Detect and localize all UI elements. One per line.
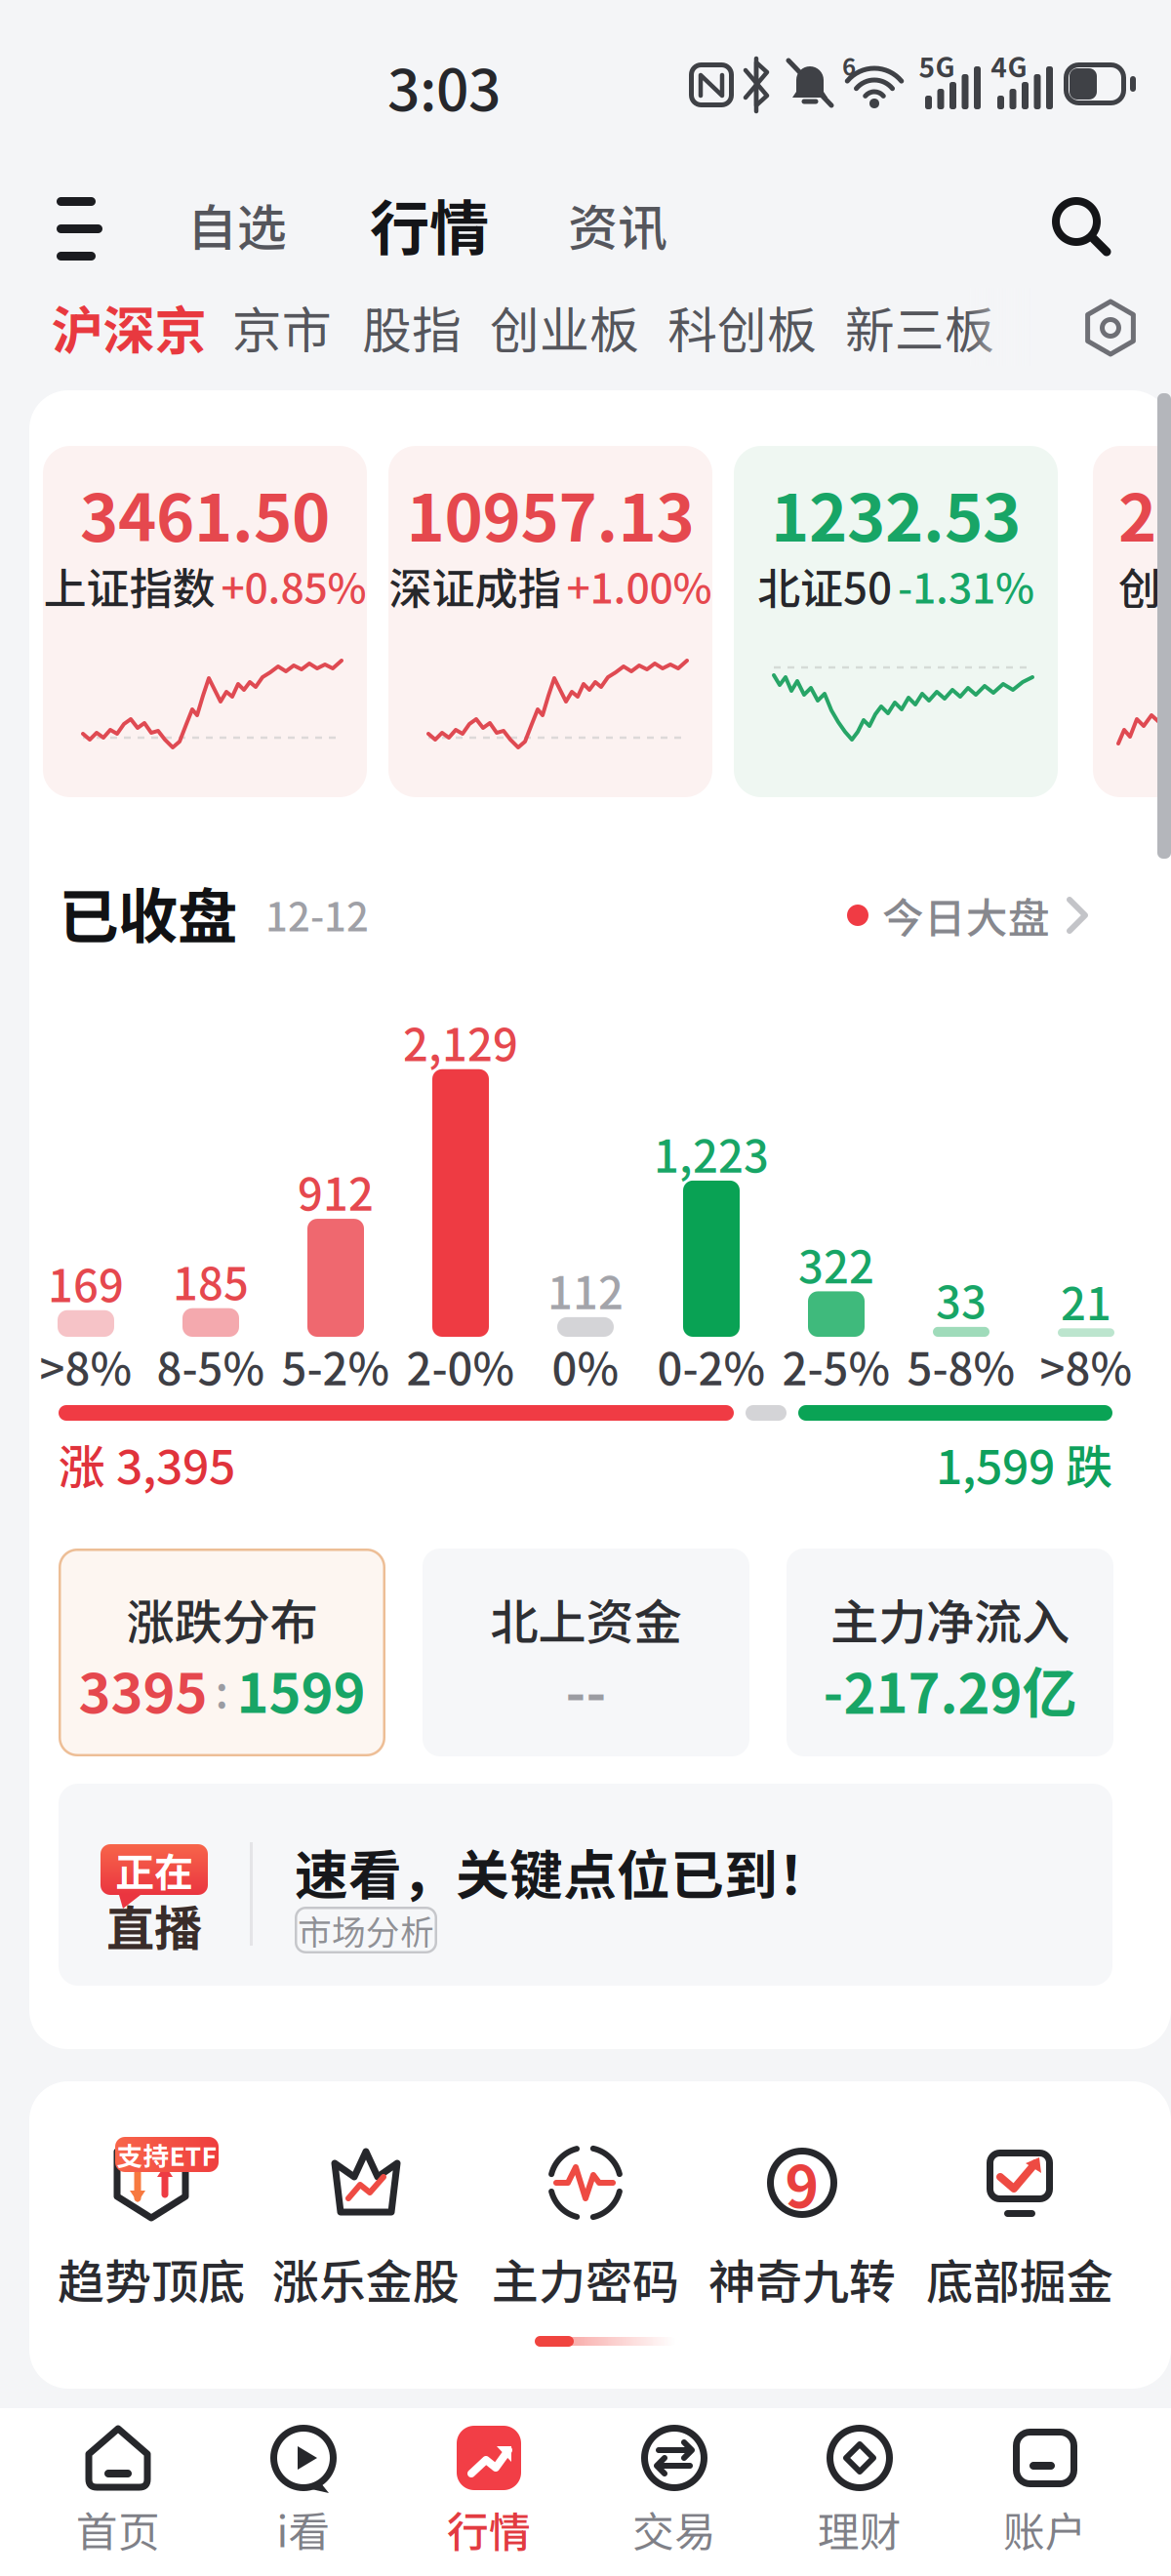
staticText: 3:03 (387, 44, 501, 127)
staticText: 2,129 (403, 1010, 518, 1074)
staticText: 底部掘金 (926, 2244, 1113, 2312)
button[interactable]: 行情 (396, 2419, 582, 2561)
staticText: 涨乐金股 (272, 2244, 460, 2312)
staticText: 行情 (370, 181, 489, 268)
staticText: 0-2% (657, 1334, 766, 1398)
button[interactable]: 股指 (348, 293, 475, 361)
staticText: 33 (936, 1268, 987, 1332)
staticText: 1599 (237, 1650, 365, 1729)
staticText: 主力净流入 (830, 1584, 1070, 1654)
staticText: 自选 (187, 189, 287, 260)
staticText: 9 (785, 2141, 819, 2224)
button[interactable]: 账户 (952, 2419, 1138, 2561)
staticText: 1,223 (654, 1121, 769, 1185)
staticText: 322 (798, 1232, 874, 1296)
staticText: 2-5% (782, 1334, 890, 1398)
staticText: 今日大盘 (882, 885, 1050, 945)
staticText: +1.00% (566, 555, 712, 616)
button[interactable]: 科创板 (657, 293, 828, 361)
staticText: +0.85% (221, 555, 366, 616)
staticText: 科创板 (667, 291, 817, 363)
staticText: -- (565, 1650, 606, 1729)
button[interactable]: Settings (1081, 299, 1140, 357)
staticText: 12-12 (265, 886, 369, 942)
staticText: 资讯 (568, 189, 667, 260)
button[interactable]: 沪深京 (41, 293, 217, 361)
button[interactable]: 10957.13 (402, 446, 726, 797)
button[interactable]: 涨跌分布 (59, 1549, 385, 1756)
staticText: 支持ETF (117, 2136, 217, 2173)
button[interactable]: 理财 (767, 2419, 952, 2561)
staticText: 5-8% (907, 1334, 1015, 1398)
staticText: 169 (48, 1251, 124, 1315)
staticText: 3395 (79, 1650, 207, 1729)
staticText: 2179.78 (1118, 466, 1171, 560)
button[interactable]: 行情 (342, 183, 517, 265)
staticText: 3461.50 (80, 466, 330, 560)
staticText: 沪深京 (51, 289, 206, 365)
button[interactable]: 9 (698, 2113, 907, 2317)
button[interactable]: 3461.50 (57, 446, 381, 797)
button[interactable]: Menu (57, 193, 103, 263)
staticText: i看 (277, 2499, 330, 2559)
staticText: 2-0% (406, 1334, 515, 1398)
staticText: 10957.13 (406, 466, 694, 560)
staticText: 深证成指 (389, 554, 561, 616)
button[interactable]: 正在 (59, 1784, 1112, 1986)
staticText: 1,599 跌 (936, 1430, 1112, 1497)
staticText: >8% (1040, 1334, 1132, 1398)
button[interactable]: 新三板 (834, 293, 1005, 361)
button[interactable]: 今日大盘 (818, 881, 1120, 949)
staticText: 北上资金 (490, 1584, 682, 1654)
staticText: 4G (991, 46, 1027, 85)
staticText: 正在 (115, 1841, 193, 1898)
staticText: -1.31% (898, 555, 1034, 616)
staticText: 北证50 (757, 554, 892, 616)
staticText: 首页 (76, 2499, 160, 2559)
button[interactable]: i看 (211, 2419, 396, 2561)
button[interactable]: 首页 (25, 2419, 211, 2561)
staticText: 京市 (232, 291, 332, 363)
button[interactable]: 趋势顶底 (47, 2113, 256, 2317)
staticText: 5-2% (282, 1334, 390, 1398)
button[interactable]: 涨乐金股 (262, 2113, 470, 2317)
button[interactable]: 京市 (219, 293, 345, 361)
staticText: 趋势顶底 (58, 2244, 245, 2312)
staticText: 185 (173, 1249, 249, 1313)
staticText: 912 (298, 1159, 374, 1224)
staticText: 速看，关键点位已到！ (295, 1833, 831, 1910)
staticText: 已收盘 (59, 869, 237, 956)
staticText: 创业板指 (1118, 554, 1171, 616)
staticText: 112 (547, 1258, 624, 1322)
staticText: 创业板 (490, 291, 639, 363)
staticText: : (215, 1657, 229, 1721)
button[interactable]: 自选 (164, 185, 310, 263)
staticText: 理财 (818, 2499, 902, 2559)
staticText: 5G (919, 46, 955, 85)
button[interactable]: 底部掘金 (915, 2113, 1124, 2317)
staticText: 上证指数 (43, 554, 215, 616)
button[interactable]: 创业板 (479, 293, 650, 361)
button[interactable]: Search (1048, 193, 1112, 258)
button[interactable]: 主力密码 (481, 2113, 690, 2317)
staticText: 21 (1061, 1269, 1111, 1333)
staticText: 主力密码 (492, 2244, 679, 2312)
button[interactable]: 资讯 (545, 185, 691, 263)
button[interactable]: 交易 (582, 2419, 767, 2561)
button[interactable]: 北上资金 (423, 1549, 749, 1756)
staticText: 股指 (362, 291, 462, 363)
button[interactable]: 1232.53 (747, 446, 1071, 797)
staticText: >8% (40, 1334, 132, 1398)
staticText: -217.29亿 (823, 1650, 1077, 1729)
button[interactable]: 主力净流入 (787, 1549, 1113, 1756)
staticText: 新三板 (845, 291, 994, 363)
staticText: 账户 (1003, 2499, 1087, 2559)
staticText: 市场分析 (298, 1906, 434, 1955)
staticText: 直播 (106, 1890, 202, 1960)
staticText: 8-5% (157, 1334, 265, 1398)
staticText: 涨 3,395 (59, 1430, 235, 1497)
staticText: 交易 (632, 2499, 716, 2559)
staticText: 涨跌分布 (126, 1584, 318, 1654)
staticText: 神奇九转 (708, 2244, 896, 2312)
staticText: 行情 (447, 2499, 531, 2559)
